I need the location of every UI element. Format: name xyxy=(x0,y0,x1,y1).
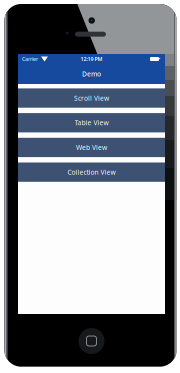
staticText: 12:19 PM xyxy=(80,55,102,63)
button[interactable]: Scroll View xyxy=(18,88,165,108)
staticText: Table View xyxy=(74,118,108,127)
button[interactable]: Table View xyxy=(18,113,165,132)
staticText: Carrier xyxy=(22,55,38,63)
staticText: Collection View xyxy=(67,168,115,177)
button[interactable]: Collection View xyxy=(18,162,165,182)
staticText: Demo xyxy=(82,70,101,78)
staticText: Web View xyxy=(76,143,107,152)
staticText: Scroll View xyxy=(74,94,109,102)
button[interactable]: Web View xyxy=(18,138,165,157)
